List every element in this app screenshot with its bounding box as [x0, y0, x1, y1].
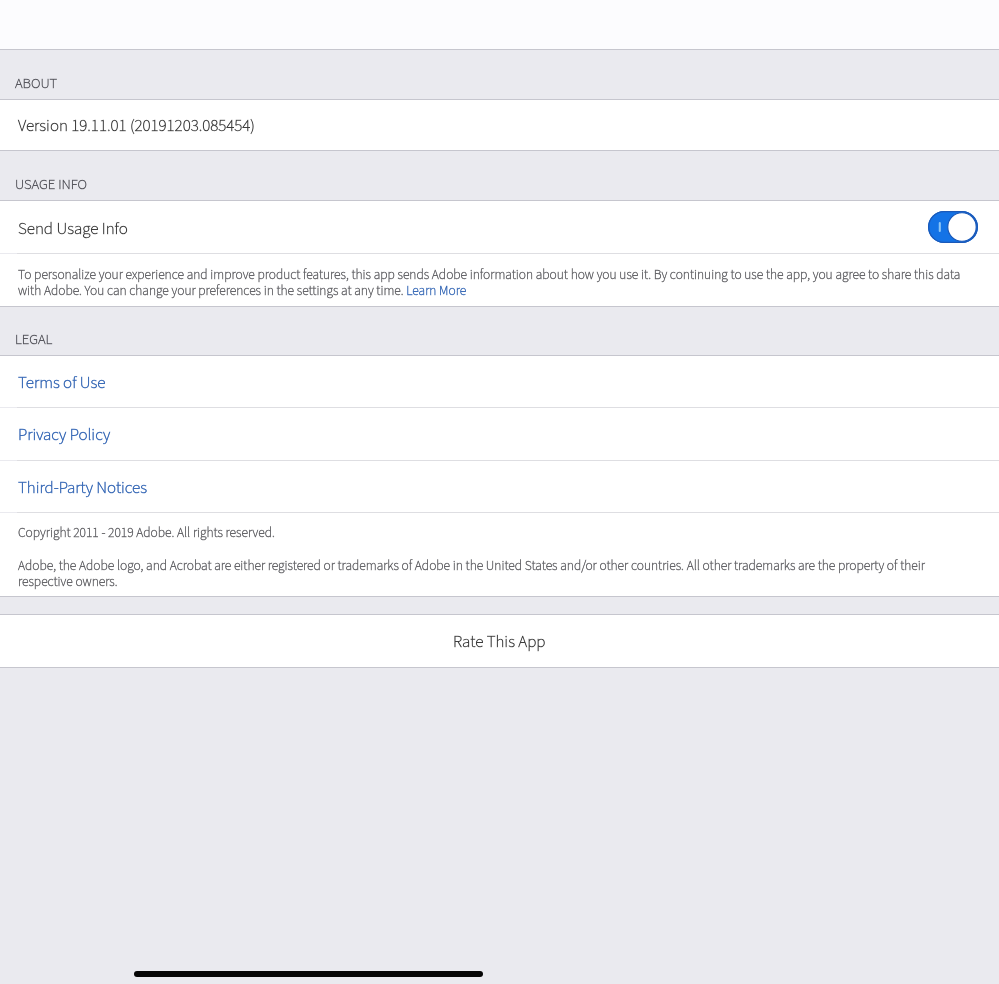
staticText: USAGE INFO	[15, 174, 87, 195]
staticText: Terms of Use	[18, 371, 106, 395]
staticText: Terms of Use	[18, 371, 106, 395]
staticText: Privacy Policy	[18, 423, 111, 447]
button[interactable]: Send Usage Info	[0, 201, 999, 253]
staticText: Adobe, the Adobe logo, and Acrobat are e…	[18, 556, 971, 591]
button[interactable]: Third-Party Notices	[0, 461, 999, 512]
staticText: Adobe, the Adobe logo, and Acrobat are e…	[18, 556, 971, 591]
button[interactable]: Send usage info toggle, on	[928, 211, 978, 243]
staticText: Rate This App	[453, 630, 546, 654]
staticText: To personalize your experience and impro…	[18, 265, 971, 300]
staticText: To personalize your experience and impro…	[18, 265, 971, 300]
button[interactable]: Version 19.11.01 (20191203.085454)	[0, 100, 999, 150]
staticText: Third-Party Notices	[18, 476, 148, 500]
staticText: Copyright 2011 - 2019 Adobe. All rights …	[18, 523, 275, 542]
staticText: USAGE INFO	[15, 174, 87, 195]
staticText: Version 19.11.01 (20191203.085454)	[18, 114, 255, 138]
button[interactable]: Rate This App	[0, 615, 999, 667]
button[interactable]: Terms of Use	[0, 356, 999, 407]
staticText: ABOUT	[15, 73, 58, 94]
staticText: Third-Party Notices	[18, 476, 148, 500]
staticText: Send Usage Info	[18, 217, 128, 241]
staticText: LEGAL	[15, 329, 53, 350]
staticText: Privacy Policy	[18, 423, 111, 447]
staticText: Version 19.11.01 (20191203.085454)	[18, 114, 255, 138]
staticText: Copyright 2011 - 2019 Adobe. All rights …	[18, 523, 275, 542]
staticText: ABOUT	[15, 73, 58, 94]
staticText: LEGAL	[15, 329, 53, 350]
staticText: Send Usage Info	[18, 217, 128, 241]
staticText: Rate This App	[453, 630, 546, 654]
button[interactable]: Privacy Policy	[0, 408, 999, 460]
